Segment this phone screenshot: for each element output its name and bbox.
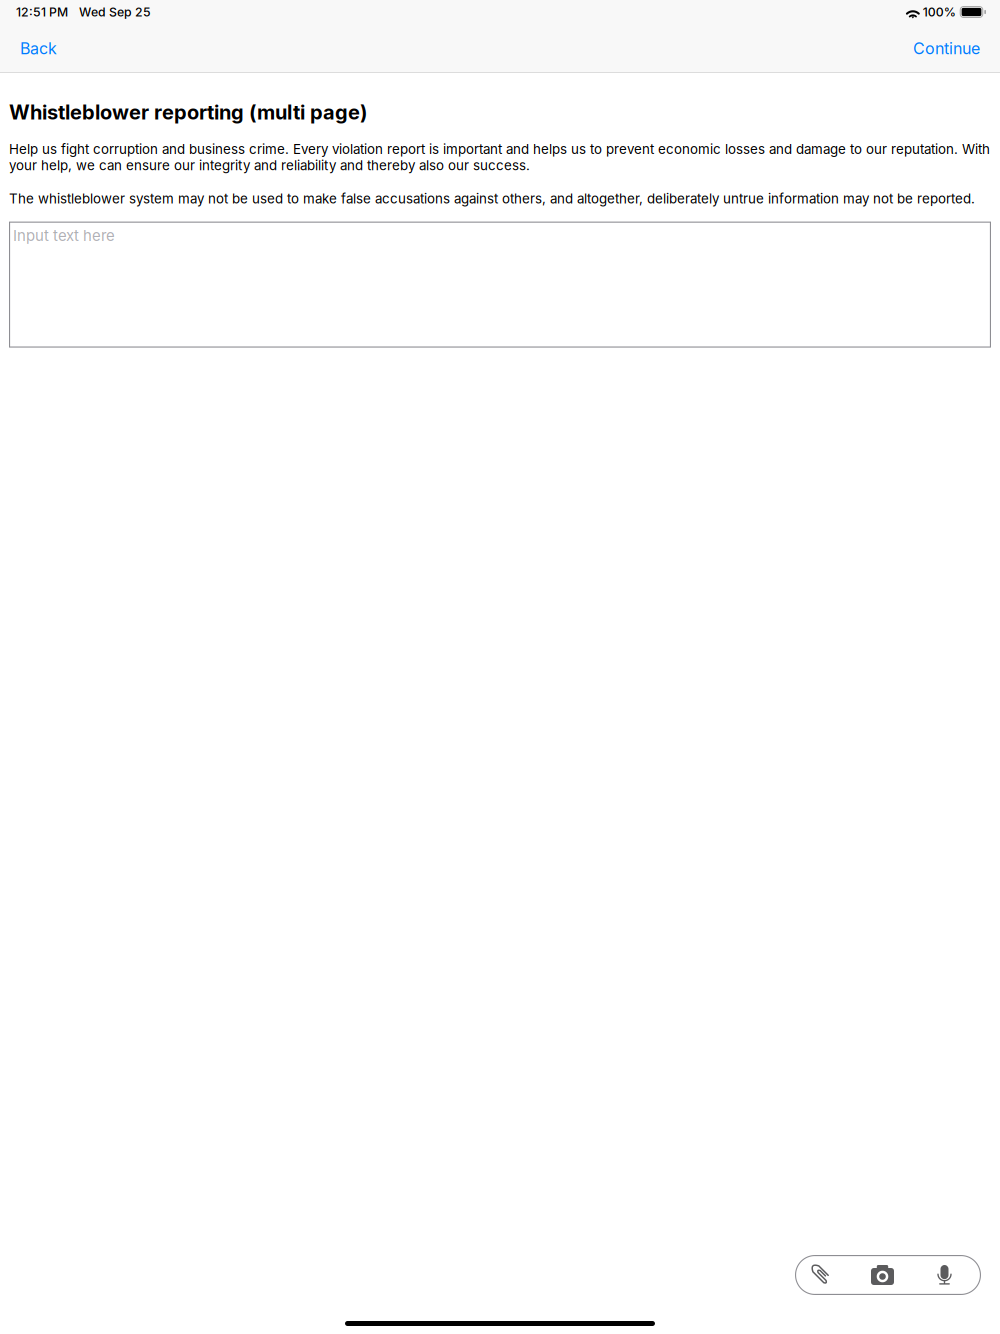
staticText: Help us fight corruption and business cr…: [9, 141, 990, 173]
staticText: 12:51 PM: [16, 5, 68, 19]
staticText: Input text here: [13, 227, 115, 245]
staticText: Back: [20, 39, 57, 58]
staticText: 100%: [923, 5, 956, 19]
staticText: Whistleblower reporting (multi page): [9, 100, 367, 124]
button[interactable]: Continue: [907, 31, 986, 66]
staticText: The whistleblower system may not be used…: [9, 190, 975, 207]
button[interactable]: Record voice message: [912, 1255, 977, 1295]
staticText: Continue: [913, 39, 980, 58]
button[interactable]: Attach file: [795, 1255, 853, 1295]
button[interactable]: Input text here: [9, 222, 991, 348]
staticText: Wed Sep 25: [79, 5, 151, 19]
button[interactable]: Back: [14, 31, 63, 66]
button[interactable]: Take photo: [853, 1255, 912, 1295]
